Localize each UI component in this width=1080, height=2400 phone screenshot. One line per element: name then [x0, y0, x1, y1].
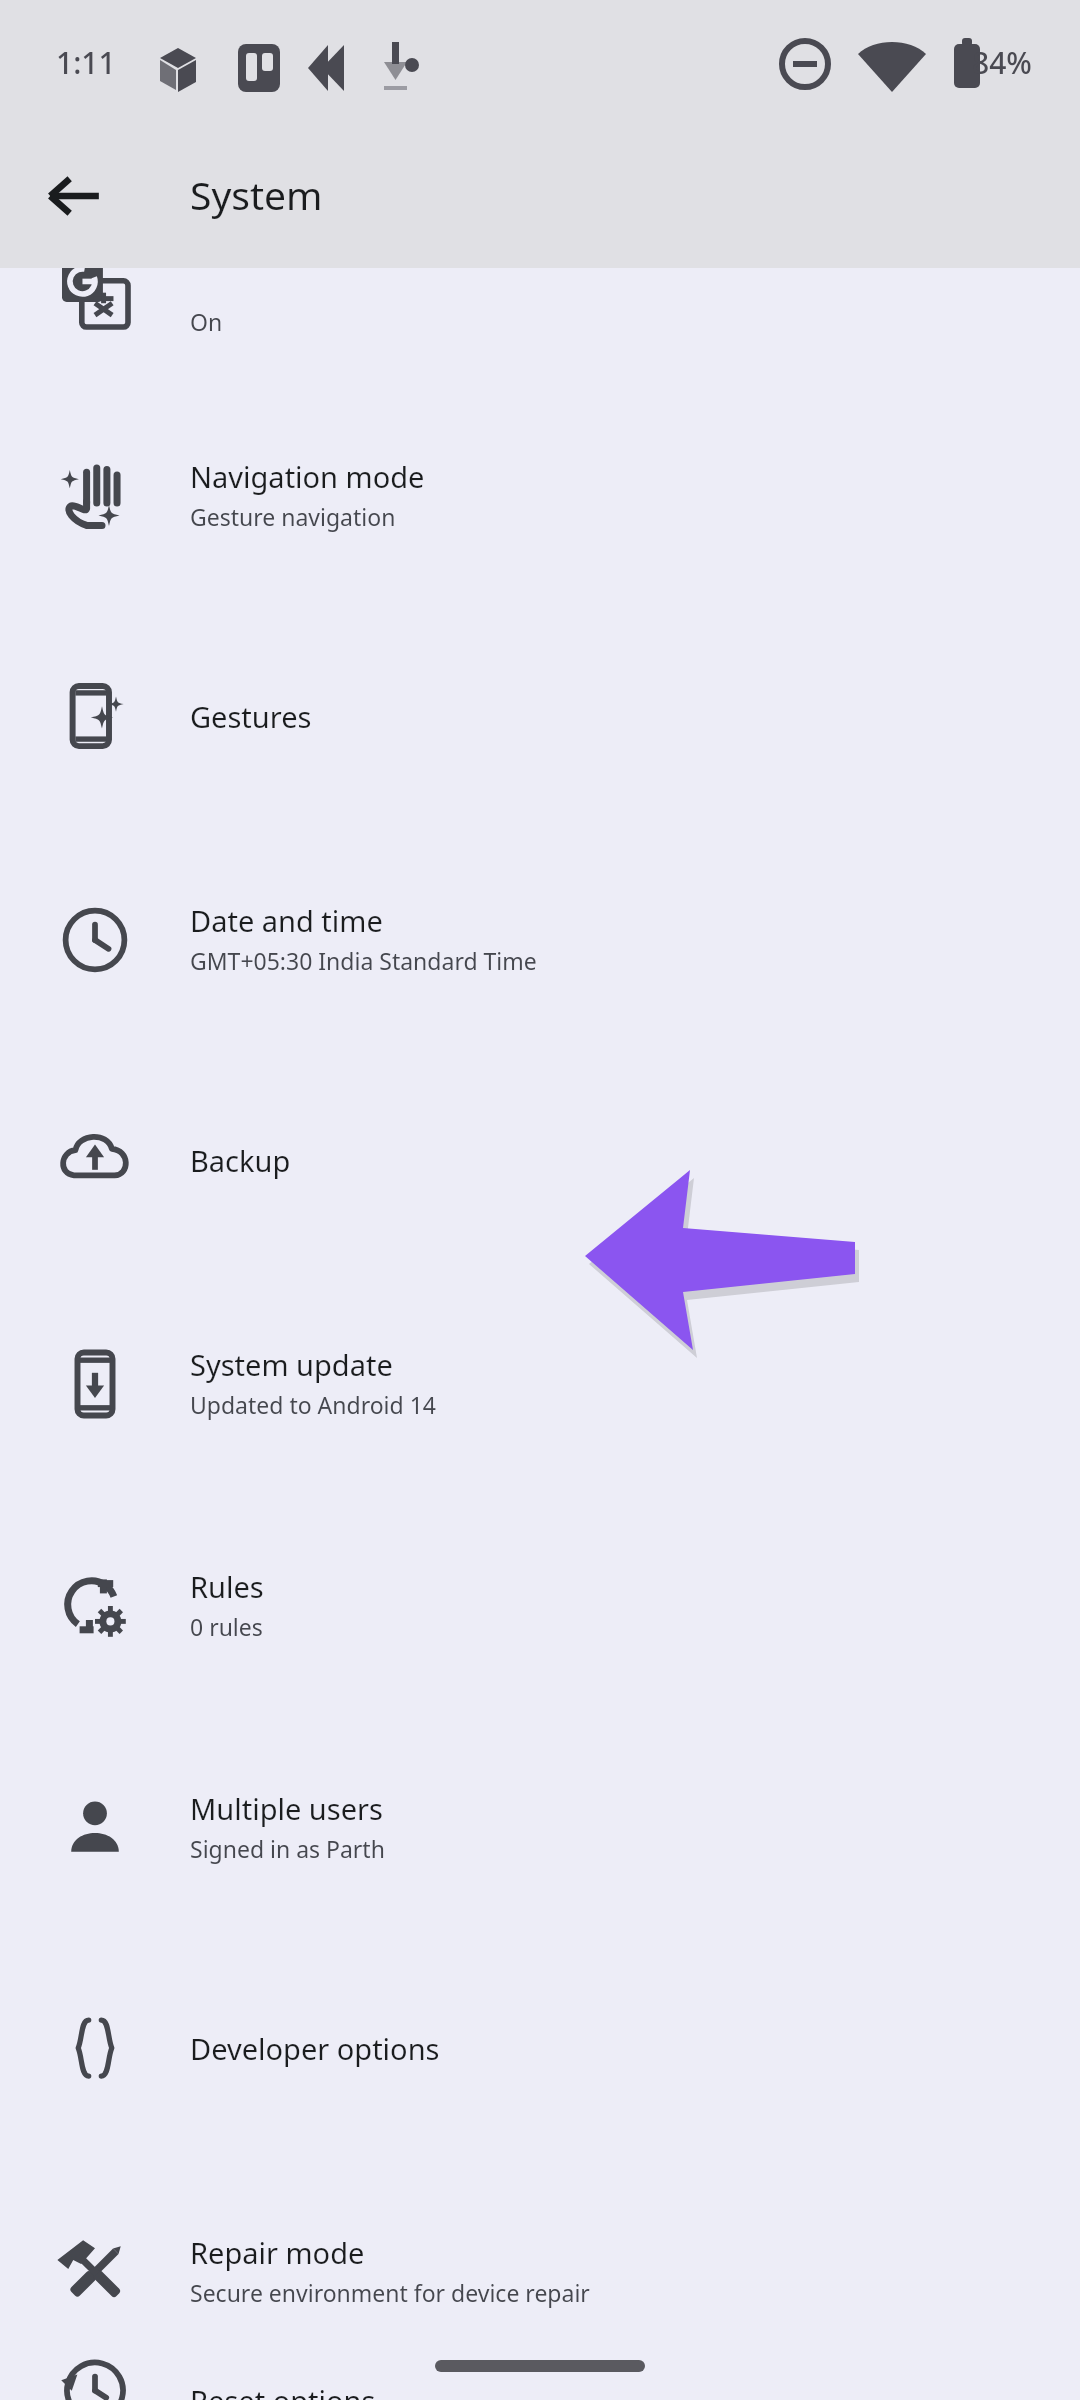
button[interactable]: Rules [0, 1493, 1080, 1715]
button[interactable]: Multiple users [0, 1715, 1080, 1937]
staticText: Updated to Android 14 [190, 1389, 436, 1420]
staticText: Repair mode [190, 2233, 365, 2272]
button[interactable]: Gestures [0, 605, 1080, 827]
staticText: Rules [190, 1567, 264, 1606]
staticText: Navigation mode [190, 457, 425, 496]
button[interactable]: Reset options [0, 2381, 1080, 2400]
staticText: On [190, 306, 223, 337]
staticText: System [190, 168, 323, 221]
staticText: Developer options [190, 2029, 440, 2068]
button[interactable]: Backup [0, 1049, 1080, 1271]
staticText: Date and time [190, 901, 383, 940]
button[interactable]: System update [0, 1271, 1080, 1493]
staticText: Reset options [190, 2381, 376, 2400]
staticText: 1:11 [56, 42, 116, 83]
staticText: 0 rules [190, 1611, 263, 1642]
staticText: System update [190, 1345, 393, 1384]
staticText: GMT+05:30 India Standard Time [190, 945, 537, 976]
button[interactable]: Date and time [0, 827, 1080, 1049]
staticText: Gestures [190, 697, 312, 736]
button[interactable]: Back [26, 148, 122, 244]
button[interactable]: Navigation mode [0, 383, 1080, 605]
staticText: Multiple users [190, 1789, 383, 1828]
button[interactable]: Developer options [0, 1937, 1080, 2159]
staticText: Gesture navigation [190, 501, 396, 532]
staticText: Backup [190, 1141, 291, 1180]
button[interactable]: Repair mode [0, 2159, 1080, 2381]
staticText: Secure environment for device repair [190, 2277, 590, 2308]
staticText: 84% [972, 42, 1032, 83]
staticText: Signed in as Parth [190, 1833, 385, 1864]
